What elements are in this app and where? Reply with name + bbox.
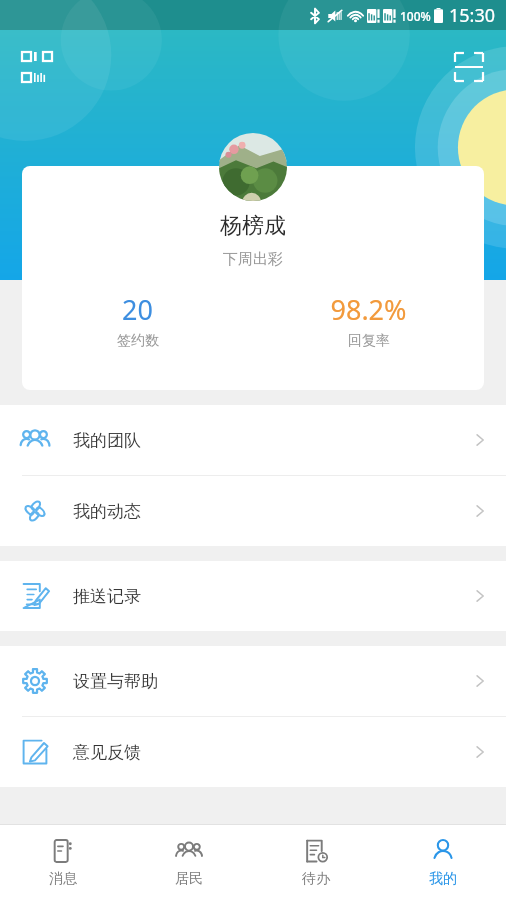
button[interactable]: 头像 [219, 133, 287, 201]
staticText: 杨榜成 [220, 212, 286, 240]
staticText: 待办 [302, 870, 330, 888]
staticText: 我的团队 [73, 430, 141, 451]
button[interactable]: 意见反馈 [0, 717, 506, 787]
button[interactable]: 我的团队 [0, 405, 506, 475]
staticText: 设置与帮助 [73, 671, 158, 692]
staticText: 100% [400, 8, 431, 24]
staticText: 消息 [49, 870, 77, 888]
button[interactable]: 推送记录 [0, 561, 506, 631]
button[interactable]: 我的动态 [0, 476, 506, 546]
button[interactable]: 扫一扫 [450, 48, 488, 86]
button[interactable]: 待办 [252, 825, 379, 900]
button[interactable]: 扫码 [18, 48, 56, 86]
staticText: 98.2% [330, 291, 407, 328]
button[interactable]: 我的 [379, 825, 506, 900]
button[interactable]: 20 [22, 291, 253, 350]
staticText: 签约数 [117, 332, 159, 350]
staticText: 意见反馈 [73, 742, 141, 763]
button[interactable]: 消息 [0, 825, 126, 900]
staticText: 下周出彩 [223, 250, 283, 269]
staticText: 我的动态 [73, 501, 141, 522]
staticText: 15:30 [449, 3, 496, 28]
staticText: 我的 [429, 870, 457, 888]
button[interactable]: 居民 [126, 825, 252, 900]
button[interactable]: 设置与帮助 [0, 646, 506, 716]
staticText: 回复率 [348, 332, 390, 350]
staticText: 居民 [175, 870, 203, 888]
staticText: 推送记录 [73, 586, 141, 607]
staticText: 20 [122, 291, 153, 328]
button[interactable]: 98.2% [253, 291, 484, 350]
